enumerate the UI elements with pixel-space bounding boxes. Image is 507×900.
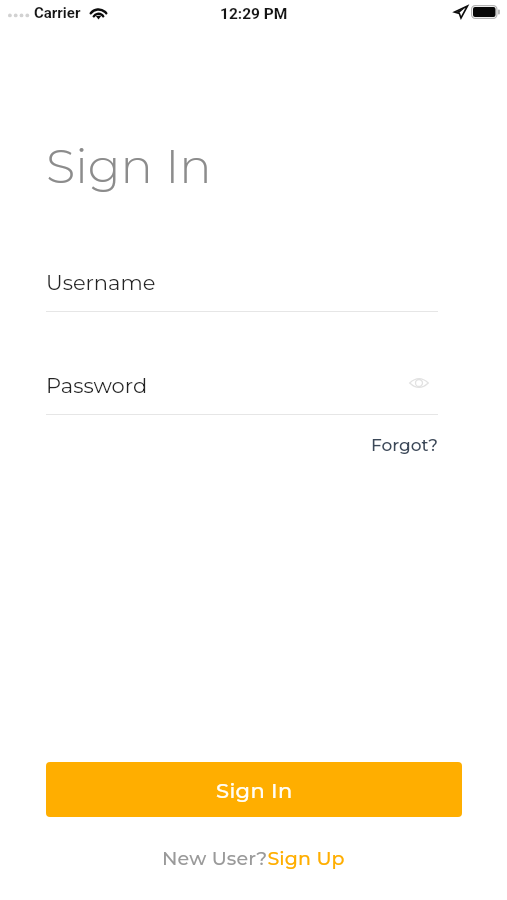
button[interactable]: New User?Sign Up bbox=[158, 845, 349, 872]
button[interactable]: Sign In bbox=[46, 762, 462, 817]
other: Wi-Fi bbox=[89, 6, 108, 20]
other: Battery full bbox=[471, 5, 501, 19]
staticText: Password bbox=[46, 373, 148, 399]
staticText: Sign In bbox=[46, 137, 212, 196]
staticText: Forgot? bbox=[371, 435, 439, 456]
staticText: Username bbox=[46, 270, 156, 296]
staticText: Carrier bbox=[34, 4, 81, 22]
other: Location services active bbox=[454, 5, 468, 19]
staticText: Sign In bbox=[216, 778, 293, 804]
button[interactable]: Forgot? bbox=[367, 432, 443, 459]
button[interactable]: Show password bbox=[404, 368, 434, 398]
button[interactable]: Password bbox=[46, 373, 438, 399]
button[interactable]: Username bbox=[46, 270, 438, 312]
staticText: New User?Sign Up bbox=[162, 847, 345, 870]
other: Signal strength bbox=[8, 14, 30, 20]
staticText: 12:29 PM bbox=[220, 5, 288, 23]
